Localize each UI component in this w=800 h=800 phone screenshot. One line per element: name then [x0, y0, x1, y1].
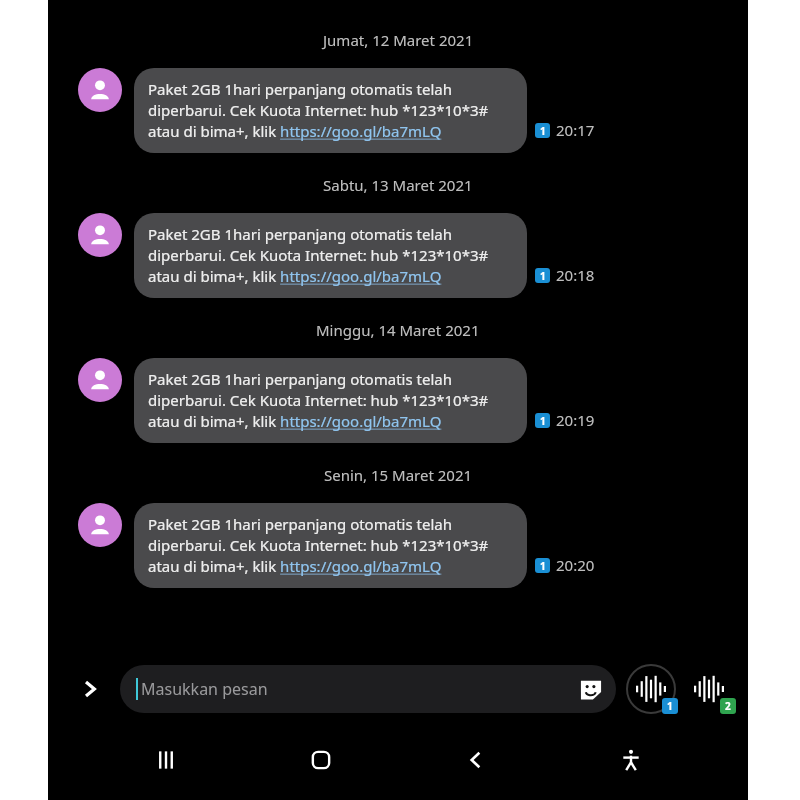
button[interactable]: Contact avatar — [78, 68, 122, 112]
button[interactable]: Paket 2GB 1hari perpanjang otomatis tela… — [134, 503, 527, 588]
staticText: 1 — [540, 414, 546, 428]
staticText: 2 — [725, 699, 731, 713]
staticText: 1 — [667, 699, 673, 713]
button[interactable]: Send with SIM 1 — [622, 660, 680, 718]
staticText: 20:20 — [556, 555, 595, 575]
button[interactable]: Contact avatar — [78, 213, 122, 257]
staticText: 20:18 — [556, 265, 595, 285]
staticText: Senin, 15 Maret 2021 — [324, 465, 473, 485]
button[interactable]: Recent apps — [88, 734, 243, 786]
button[interactable]: Expand options — [70, 669, 110, 709]
staticText: Paket 2GB 1hari perpanjang otomatis tela… — [148, 79, 489, 142]
staticText: Masukkan pesan — [141, 678, 268, 700]
button[interactable]: Back — [398, 734, 553, 786]
staticText: Paket 2GB 1hari perpanjang otomatis tela… — [148, 224, 489, 287]
staticText: Sabtu, 13 Maret 2021 — [323, 175, 473, 195]
button[interactable]: Stickers — [576, 674, 606, 704]
button[interactable]: Home — [243, 734, 398, 786]
staticText: 1 — [540, 559, 546, 573]
staticText: Paket 2GB 1hari perpanjang otomatis tela… — [148, 369, 489, 432]
button[interactable]: Contact avatar — [78, 358, 122, 402]
button[interactable]: Paket 2GB 1hari perpanjang otomatis tela… — [134, 358, 527, 443]
button[interactable]: Send with SIM 2 — [680, 660, 738, 718]
button[interactable]: Masukkan pesan — [120, 665, 616, 713]
button[interactable]: Paket 2GB 1hari perpanjang otomatis tela… — [134, 213, 527, 298]
staticText: 20:17 — [556, 120, 595, 140]
staticText: 20:19 — [556, 410, 595, 430]
staticText: 1 — [540, 124, 546, 138]
button[interactable]: Contact avatar — [78, 503, 122, 547]
staticText: 1 — [540, 269, 546, 283]
button[interactable]: Accessibility — [553, 734, 708, 786]
button[interactable]: Paket 2GB 1hari perpanjang otomatis tela… — [134, 68, 527, 153]
staticText: Paket 2GB 1hari perpanjang otomatis tela… — [148, 514, 489, 577]
staticText: Minggu, 14 Maret 2021 — [316, 320, 480, 340]
staticText: Jumat, 12 Maret 2021 — [323, 30, 474, 50]
